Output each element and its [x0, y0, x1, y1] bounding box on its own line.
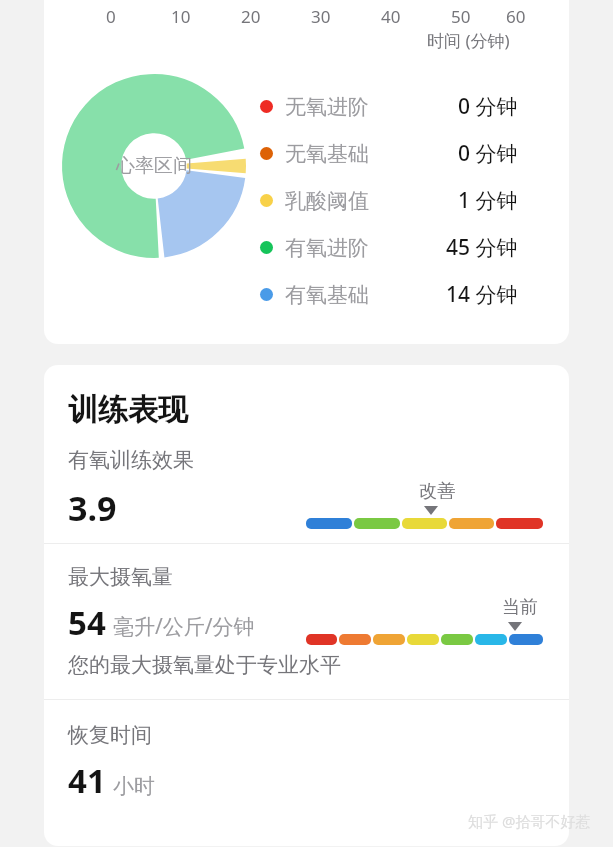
staticText: 乳酸阈值: [285, 188, 369, 214]
button[interactable]: 无氧基础: [260, 130, 569, 177]
button[interactable]: 训练表现: [44, 365, 569, 543]
button[interactable]: 0: [44, 0, 569, 344]
staticText: 心率区间: [116, 154, 192, 178]
staticText: 训练表现: [68, 391, 188, 429]
staticText: 最大摄氧量: [68, 564, 173, 590]
staticText: 30: [311, 5, 331, 28]
button[interactable]: 有氧进阶: [260, 224, 569, 271]
staticText: 60: [506, 5, 526, 28]
staticText: 小时: [113, 773, 155, 799]
button[interactable]: 无氧进阶: [260, 83, 569, 130]
staticText: 无氧基础: [285, 141, 369, 167]
staticText: 1 分钟: [458, 186, 518, 215]
staticText: 时间 (分钟): [427, 29, 510, 52]
staticText: 0 分钟: [458, 139, 518, 168]
staticText: 无氧进阶: [285, 94, 369, 120]
staticText: 有氧基础: [285, 282, 369, 308]
staticText: 40: [381, 5, 401, 28]
staticText: 0: [106, 5, 116, 28]
button[interactable]: 最大摄氧量: [44, 544, 569, 699]
staticText: 您的最大摄氧量处于专业水平: [68, 652, 341, 678]
staticText: 0 分钟: [458, 92, 518, 121]
staticText: 恢复时间: [68, 722, 152, 748]
staticText: 45 分钟: [446, 233, 518, 262]
staticText: 20: [241, 5, 261, 28]
staticText: 41: [68, 758, 106, 803]
staticText: 改善: [419, 480, 455, 503]
staticText: 10: [171, 5, 191, 28]
staticText: 50: [451, 5, 471, 28]
staticText: 3.9: [68, 485, 117, 531]
staticText: 有氧训练效果: [68, 447, 194, 473]
staticText: 知乎 @拾哥不好惹: [468, 811, 591, 831]
button[interactable]: 有氧基础: [260, 271, 569, 318]
staticText: 有氧进阶: [285, 235, 369, 261]
staticText: 当前: [502, 596, 538, 619]
staticText: 54: [68, 600, 106, 645]
staticText: 14 分钟: [446, 280, 518, 309]
button[interactable]: 恢复时间: [44, 700, 569, 846]
staticText: 毫升/公斤/分钟: [113, 612, 255, 641]
button[interactable]: 乳酸阈值: [260, 177, 569, 224]
